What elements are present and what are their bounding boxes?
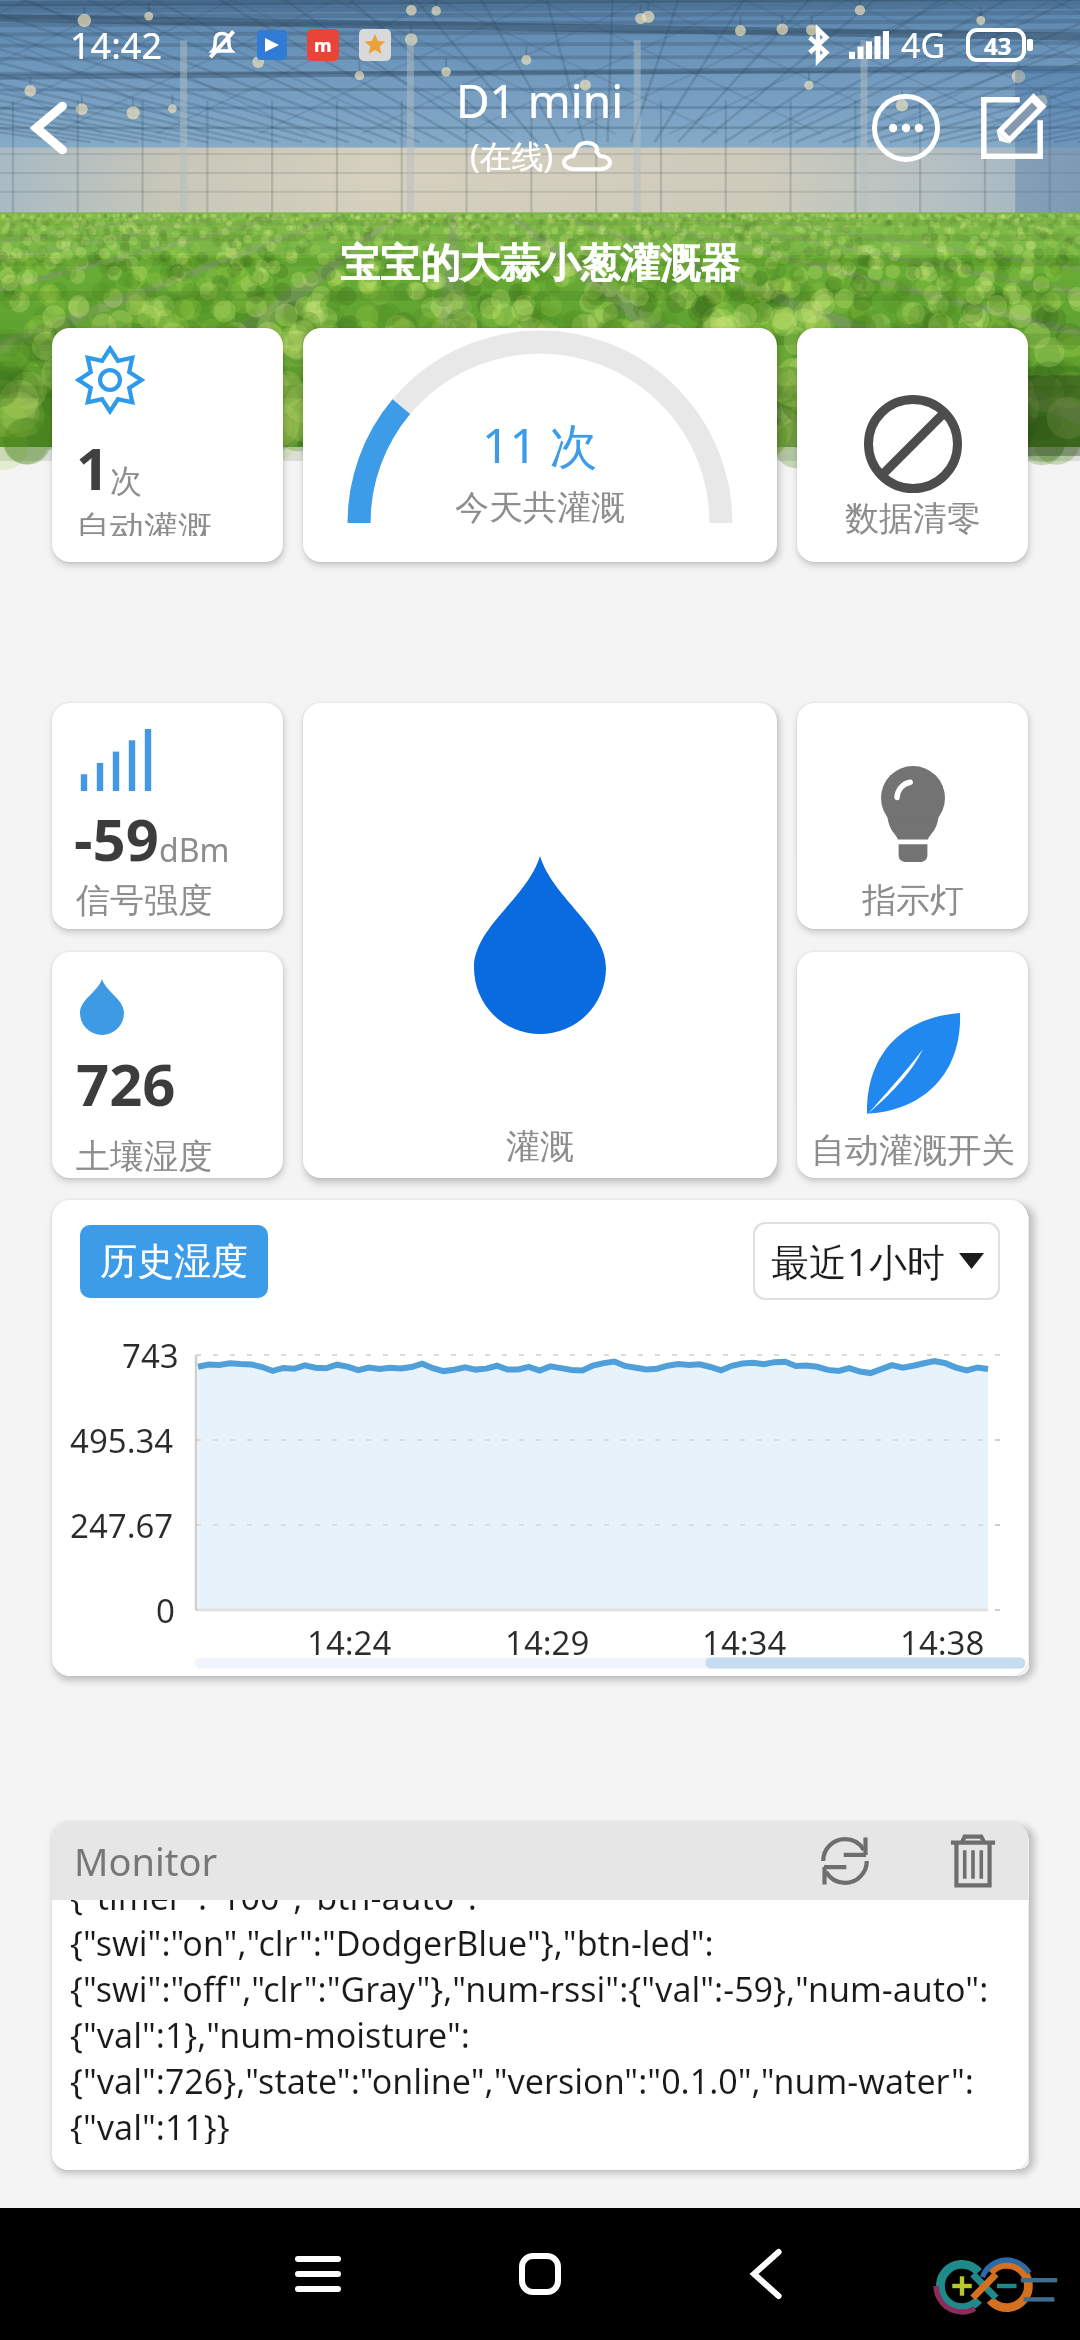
button[interactable]: Recent apps	[258, 2208, 378, 2340]
staticText: {"val":726},"state":"online","version":"…	[70, 2058, 974, 2104]
staticText: 土壤湿度	[76, 1135, 212, 1178]
staticText: 信号强度	[76, 879, 212, 922]
button[interactable]: 1	[52, 328, 283, 562]
button[interactable]: 11 次	[303, 328, 777, 562]
staticText: 14:29	[505, 1620, 590, 1665]
button[interactable]: Refresh	[812, 1828, 878, 1894]
staticText: 14:42	[70, 21, 163, 70]
button[interactable]: 数据清零	[797, 328, 1028, 562]
staticText: 最近1小时	[771, 1235, 945, 1287]
staticText: 743	[122, 1333, 179, 1378]
button[interactable]: Back	[10, 87, 92, 169]
staticText: 指示灯	[862, 879, 964, 922]
staticText: m	[314, 33, 332, 58]
staticText: 0	[156, 1588, 175, 1633]
button[interactable]: Home	[480, 2208, 600, 2340]
button[interactable]: -59	[52, 703, 283, 929]
staticText: 11 次	[482, 412, 598, 478]
staticText: 自动灌溉开关	[811, 1129, 1015, 1172]
staticText: 14:34	[702, 1620, 787, 1665]
staticText: 今天共灌溉	[455, 486, 625, 529]
button[interactable]: 指示灯	[797, 703, 1028, 929]
staticText: 4G	[901, 22, 946, 68]
staticText: 726	[76, 1044, 176, 1123]
staticText: 宝宝的大蒜小葱灌溉器	[340, 238, 740, 288]
staticText: {"timer":"100","btn-auto":	[70, 1900, 477, 1920]
button[interactable]: Back	[706, 2208, 826, 2340]
staticText: 247.67	[70, 1503, 174, 1548]
button[interactable]: 灌溉	[303, 703, 777, 1178]
staticText: 灌溉	[506, 1125, 574, 1168]
staticText: 次	[110, 461, 142, 501]
staticText: 历史湿度	[100, 1238, 248, 1285]
staticText: -59	[74, 799, 159, 878]
staticText: 数据清零	[845, 497, 981, 540]
staticText: {"val":1},"num-moisture":	[70, 2012, 470, 2058]
staticText: 自动灌溉	[76, 507, 212, 536]
staticText: dBm	[159, 828, 230, 872]
staticText: {"swi":"off","clr":"Gray"},"num-rssi":{"…	[70, 1966, 989, 2012]
button[interactable]: 历史湿度	[80, 1225, 268, 1298]
button[interactable]: 726	[52, 952, 283, 1178]
staticText: D1 mini	[456, 69, 624, 132]
button[interactable]: 最近1小时	[755, 1224, 998, 1298]
staticText: 495.34	[70, 1418, 174, 1463]
button[interactable]: More options	[862, 84, 950, 172]
button[interactable]: Clear log	[940, 1828, 1006, 1894]
staticText: {"val":11}}	[70, 2104, 230, 2144]
staticText: {"swi":"on","clr":"DodgerBlue"},"btn-led…	[70, 1920, 714, 1966]
staticText: 14:38	[900, 1620, 985, 1665]
button[interactable]: 自动灌溉开关	[797, 952, 1028, 1178]
staticText: Monitor	[74, 1835, 218, 1887]
button[interactable]: Edit	[968, 84, 1056, 172]
staticText: 14:24	[307, 1620, 392, 1665]
staticText: 43	[984, 29, 1012, 62]
staticText: 1	[76, 428, 110, 507]
staticText: (在线)	[470, 134, 554, 178]
